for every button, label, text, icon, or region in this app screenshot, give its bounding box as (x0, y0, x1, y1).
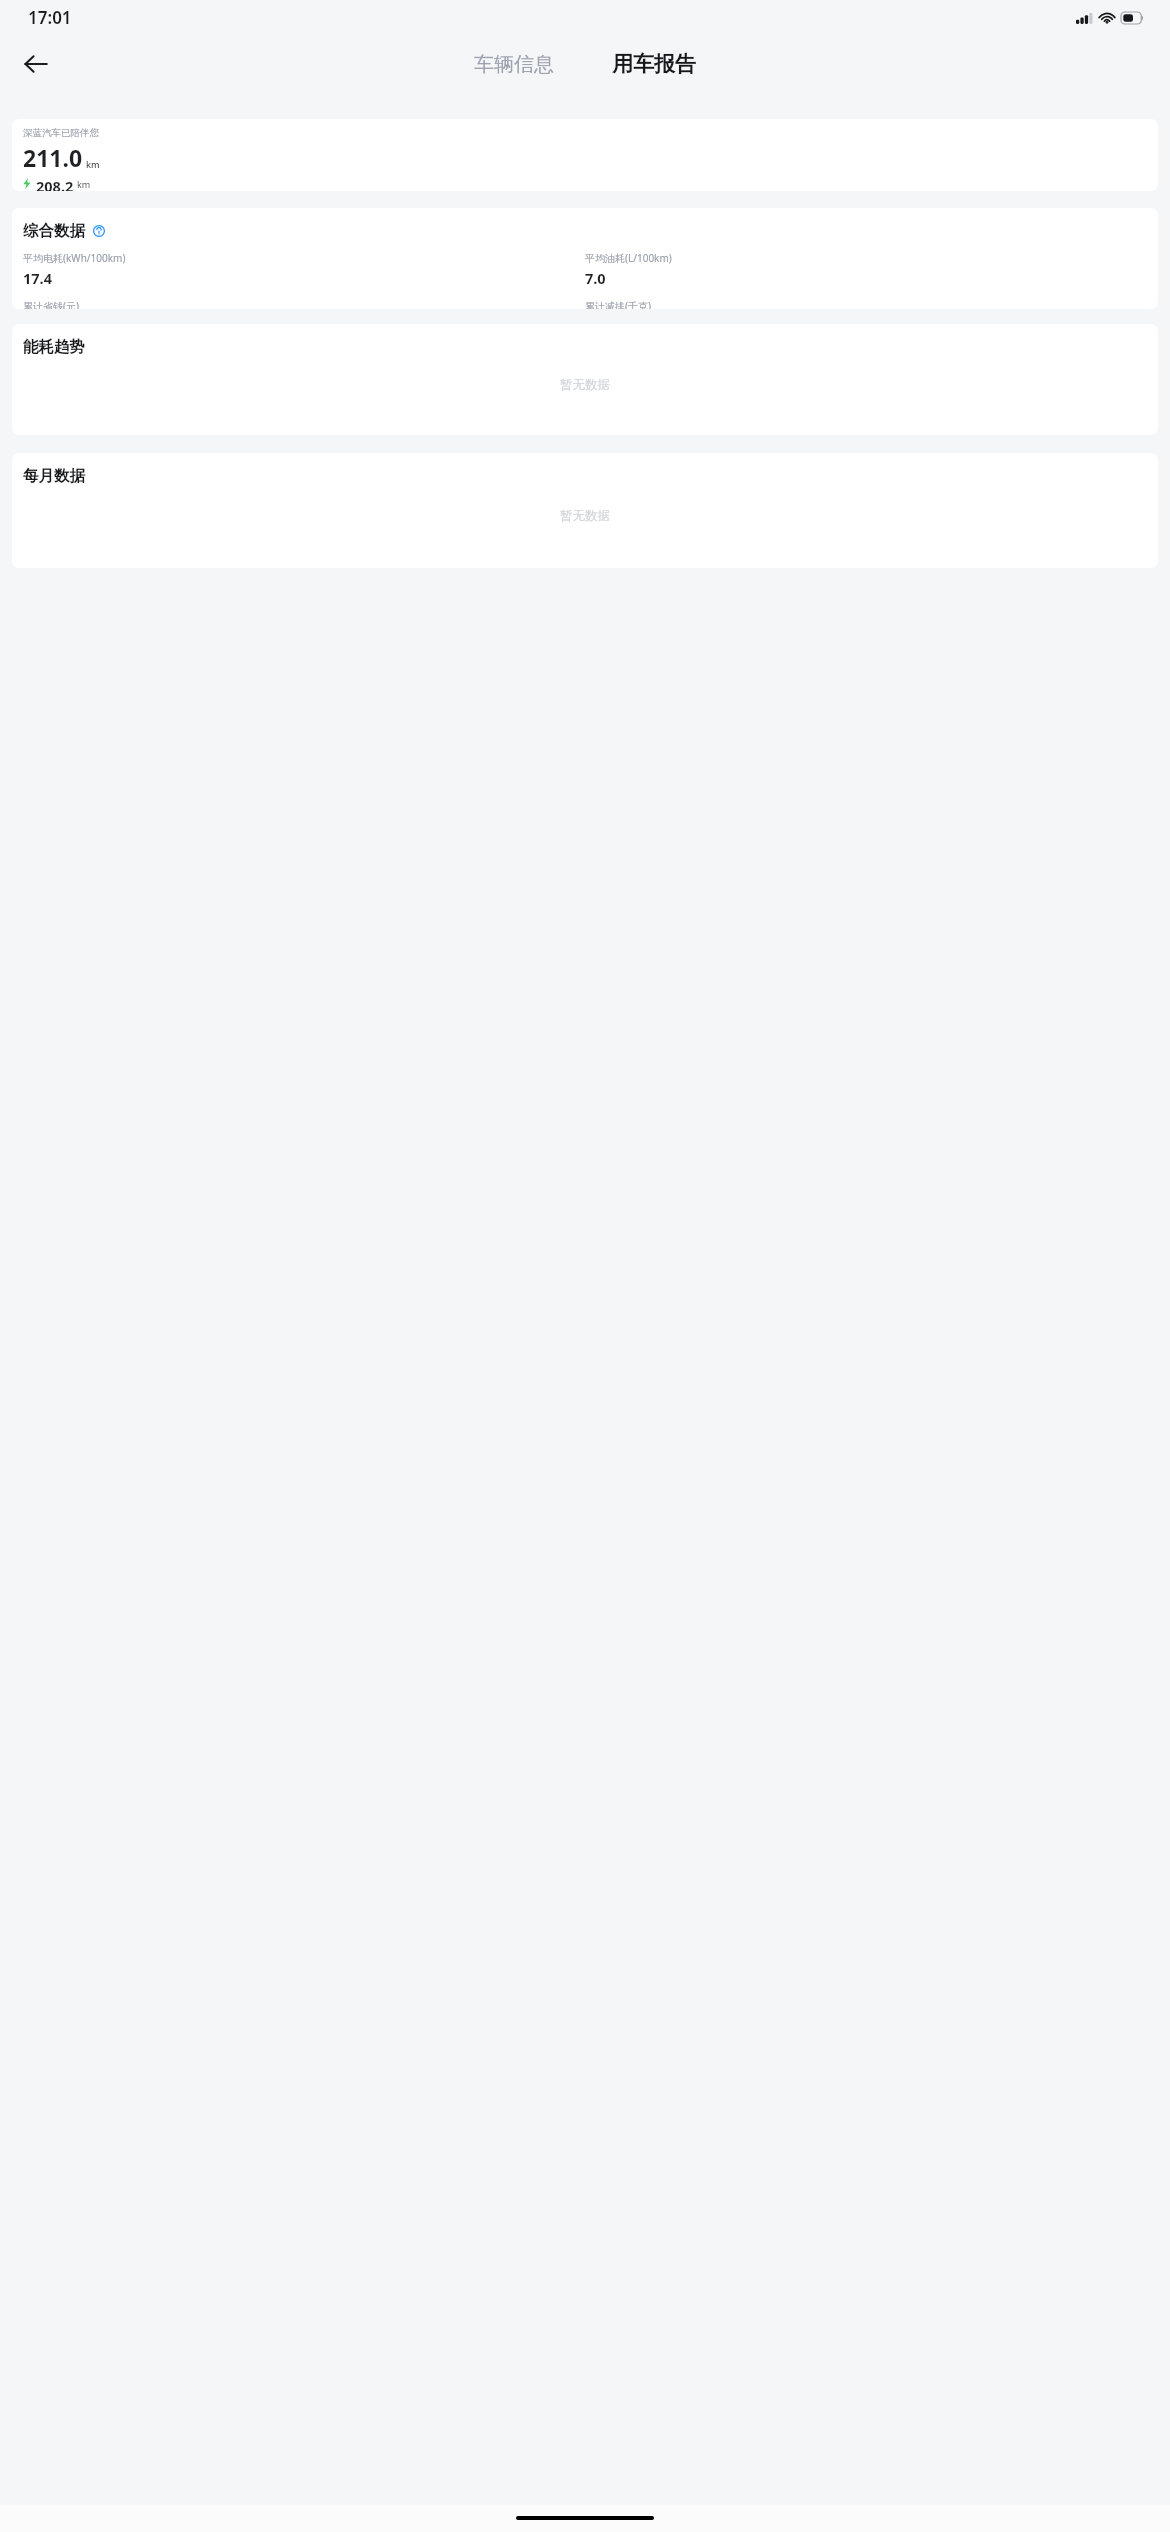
staticText: 208.2 (36, 176, 74, 191)
button[interactable]: 能耗趋势 (12, 324, 1158, 435)
staticText: 深蓝汽车已陪伴您 (23, 127, 99, 139)
button[interactable]: 综合数据 (12, 208, 1158, 309)
button[interactable]: 用车报告 (600, 45, 708, 83)
button[interactable]: 深蓝汽车已陪伴您 (12, 119, 1158, 191)
staticText: 211.0 (23, 142, 83, 173)
staticText: 累计减排(千克) (585, 299, 651, 309)
staticText: 综合数据 (23, 221, 85, 241)
button[interactable]: 每月数据 (12, 453, 1158, 568)
staticText: 17:01 (28, 6, 72, 29)
staticText: 每月数据 (23, 466, 85, 486)
staticText: 暂无数据 (560, 508, 610, 524)
staticText: km (77, 178, 91, 190)
staticText: 平均电耗(kWh/100km) (23, 251, 126, 265)
staticText: 用车报告 (612, 51, 696, 77)
button[interactable]: 车辆信息 (462, 46, 566, 83)
staticText: 平均油耗(L/100km) (585, 251, 672, 265)
button[interactable]: Help (90, 222, 108, 240)
staticText: 暂无数据 (560, 377, 610, 393)
staticText: 17.4 (23, 268, 52, 288)
staticText: 7.0 (585, 268, 606, 288)
staticText: 车辆信息 (474, 52, 554, 77)
staticText: 累计省钱(元) (23, 299, 79, 309)
staticText: km (86, 158, 100, 170)
button[interactable]: Back (10, 38, 62, 90)
staticText: 能耗趋势 (23, 337, 85, 357)
